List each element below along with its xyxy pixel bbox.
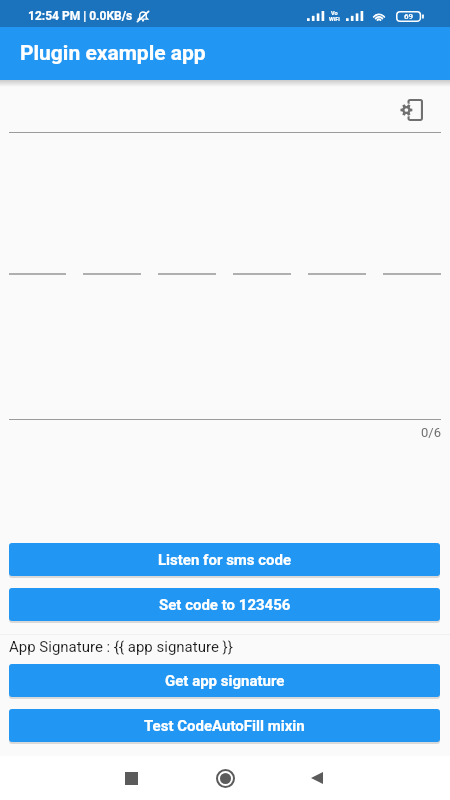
button[interactable]: Get app signature [9, 664, 440, 697]
staticText: 69 [404, 12, 414, 21]
staticText: Test CodeAutoFill mixin [144, 717, 305, 735]
staticText: Set code to 123456 [159, 596, 291, 614]
staticText: WiFi [329, 16, 340, 22]
button[interactable]: Listen for sms code [9, 543, 440, 576]
staticText: 0/6 [0, 425, 441, 440]
staticText: Get app signature [165, 672, 285, 690]
button[interactable]: Phone setup [401, 99, 423, 121]
button[interactable]: Set code to 123456 [9, 588, 440, 621]
button[interactable]: Back [294, 756, 339, 800]
button[interactable]: Home [203, 756, 248, 800]
staticText: App Signature : {{ app signature }} [9, 638, 233, 656]
staticText: Vo [331, 10, 338, 16]
button[interactable]: Test CodeAutoFill mixin [9, 709, 440, 742]
staticText: Listen for sms code [158, 551, 292, 569]
staticText: Plugin example app [20, 41, 206, 66]
staticText: 12:54 PM | 0.0KB/s [28, 9, 133, 23]
button[interactable]: Recents [109, 756, 154, 800]
